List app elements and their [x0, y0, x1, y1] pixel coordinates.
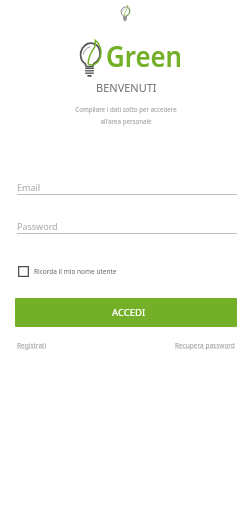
staticText: all'area personale	[100, 117, 152, 125]
button[interactable]: Email	[17, 181, 237, 195]
staticText: Ricorda il mio nome utente	[34, 267, 117, 276]
staticText: Compilare i dati sotto per accedere	[75, 105, 177, 113]
staticText: Email	[17, 181, 41, 193]
other: Green logo	[120, 6, 130, 22]
button[interactable]: Ricorda il mio nome utente	[18, 266, 117, 277]
button[interactable]: Recupera password	[175, 341, 235, 350]
button[interactable]: ACCEDI	[15, 298, 237, 327]
staticText: ACCEDI	[112, 306, 146, 319]
staticText: BENVENUTI	[96, 80, 157, 95]
staticText: Green	[106, 36, 182, 75]
staticText: Password	[17, 220, 58, 232]
button[interactable]: Password	[17, 220, 237, 234]
button[interactable]: Registrati	[17, 341, 47, 350]
